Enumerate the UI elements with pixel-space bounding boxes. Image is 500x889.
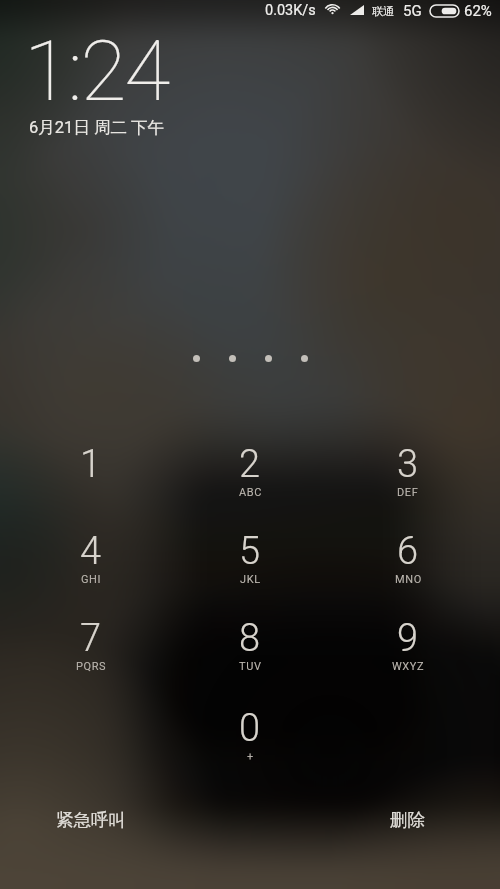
button[interactable]: 5 bbox=[180, 507, 320, 593]
button[interactable]: 7 bbox=[21, 594, 161, 680]
button[interactable]: 2 bbox=[180, 420, 320, 506]
button[interactable]: 9 bbox=[338, 594, 478, 680]
staticText: MNO bbox=[395, 573, 422, 586]
button[interactable]: 1 bbox=[21, 420, 161, 506]
staticText: 6 bbox=[397, 529, 419, 574]
staticText: 62% bbox=[464, 2, 492, 20]
button[interactable]: 紧急呼叫 bbox=[56, 809, 126, 831]
staticText: ABC bbox=[239, 486, 262, 499]
staticText: 8 bbox=[239, 616, 261, 661]
button[interactable]: 4 bbox=[21, 507, 161, 593]
staticText: WXYZ bbox=[392, 660, 425, 673]
staticText: 7 bbox=[80, 616, 102, 661]
button[interactable]: 3 bbox=[338, 420, 478, 506]
staticText: PQRS bbox=[76, 660, 107, 673]
staticText: TUV bbox=[239, 660, 262, 673]
staticText: 5G bbox=[403, 2, 422, 20]
button[interactable]: 6 bbox=[338, 507, 478, 593]
staticText: GHI bbox=[81, 573, 102, 586]
button[interactable]: 8 bbox=[180, 594, 320, 680]
staticText: JKL bbox=[240, 573, 261, 586]
button[interactable]: 删除 bbox=[390, 809, 425, 831]
staticText: + bbox=[247, 750, 254, 763]
staticText: 1 bbox=[80, 442, 102, 487]
button[interactable]: 0 bbox=[180, 684, 320, 770]
staticText: 0.03K/s bbox=[265, 2, 316, 19]
staticText: 0 bbox=[239, 706, 261, 751]
staticText: DEF bbox=[397, 486, 419, 499]
staticText: 联通 bbox=[372, 4, 394, 18]
staticText: 1:24 bbox=[24, 22, 169, 120]
staticText: 2 bbox=[239, 442, 261, 487]
staticText: 4 bbox=[80, 529, 102, 574]
staticText: 9 bbox=[397, 616, 419, 661]
staticText: 5 bbox=[239, 529, 261, 574]
staticText: 3 bbox=[397, 442, 419, 487]
staticText: 6月21日 周二 下午 bbox=[29, 117, 165, 138]
